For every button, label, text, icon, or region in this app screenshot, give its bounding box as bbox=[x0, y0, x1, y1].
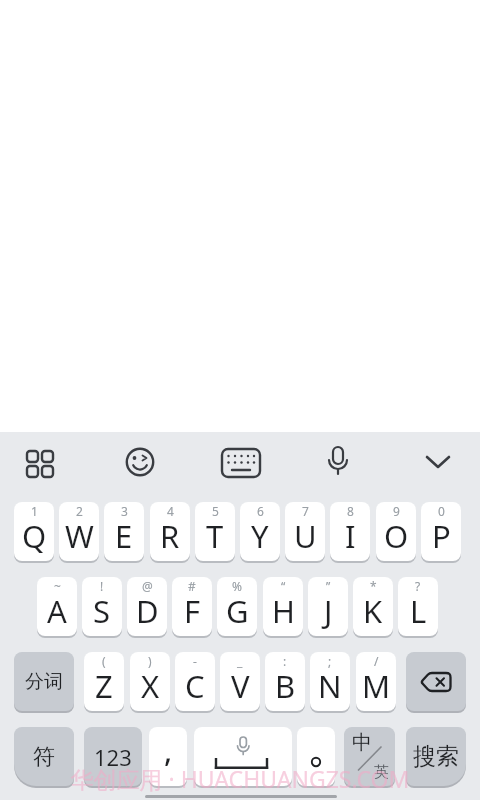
staticText: O bbox=[384, 515, 409, 557]
staticText: T bbox=[206, 515, 224, 557]
staticText: - bbox=[193, 653, 197, 669]
staticText: 分词 bbox=[25, 670, 63, 694]
staticText: ! bbox=[100, 578, 104, 594]
button[interactable]: ” bbox=[308, 577, 348, 636]
staticText: Z bbox=[95, 665, 113, 707]
button[interactable]: 8 bbox=[330, 502, 370, 561]
staticText: K bbox=[363, 590, 383, 632]
button[interactable]: / bbox=[356, 652, 396, 711]
staticText: : bbox=[283, 653, 287, 669]
staticText: “ bbox=[281, 578, 286, 594]
button[interactable]: ) bbox=[130, 652, 170, 711]
staticText: 3 bbox=[121, 503, 128, 519]
staticText: ? bbox=[415, 578, 421, 594]
button[interactable]: , bbox=[149, 727, 187, 786]
staticText: L bbox=[410, 590, 427, 632]
staticText: B bbox=[275, 665, 296, 707]
staticText: * bbox=[370, 578, 377, 594]
button[interactable]: “ bbox=[263, 577, 303, 636]
staticText: 5 bbox=[212, 503, 219, 519]
button[interactable] bbox=[118, 440, 162, 484]
staticText: ( bbox=[102, 653, 106, 669]
button[interactable]: ( bbox=[84, 652, 124, 711]
staticText: @ bbox=[142, 578, 153, 594]
button[interactable]: - bbox=[175, 652, 215, 711]
button[interactable]: # bbox=[172, 577, 212, 636]
staticText: G bbox=[226, 590, 249, 632]
staticText: 0 bbox=[438, 503, 445, 519]
button[interactable]: _ bbox=[220, 652, 260, 711]
staticText: A bbox=[47, 590, 67, 632]
staticText: F bbox=[184, 590, 201, 632]
staticText: 华创应用 · HUACHUANGZS.COM bbox=[0, 763, 480, 794]
button[interactable]: 4 bbox=[150, 502, 190, 561]
button[interactable] bbox=[18, 441, 62, 485]
button[interactable] bbox=[194, 727, 292, 786]
staticText: N bbox=[318, 665, 342, 707]
button[interactable] bbox=[218, 444, 266, 482]
staticText: _ bbox=[237, 653, 243, 669]
staticText: 8 bbox=[347, 503, 354, 519]
button[interactable]: 9 bbox=[376, 502, 416, 561]
button[interactable]: 搜索 bbox=[406, 727, 466, 786]
staticText: % bbox=[232, 578, 242, 594]
staticText: 2 bbox=[76, 503, 83, 519]
staticText: S bbox=[93, 590, 111, 632]
button[interactable] bbox=[297, 727, 335, 786]
button[interactable]: 符 bbox=[14, 727, 74, 786]
button[interactable]: 中 bbox=[344, 727, 395, 786]
staticText: 中 bbox=[352, 730, 372, 755]
button[interactable] bbox=[406, 652, 466, 711]
button[interactable]: ! bbox=[82, 577, 122, 636]
staticText: I bbox=[345, 515, 356, 557]
staticText: C bbox=[185, 665, 205, 707]
staticText: ) bbox=[148, 653, 152, 669]
button[interactable]: 123 bbox=[84, 727, 142, 786]
button[interactable]: 7 bbox=[285, 502, 325, 561]
staticText: P bbox=[432, 515, 451, 557]
staticText: / bbox=[374, 653, 379, 669]
staticText: 7 bbox=[302, 503, 309, 519]
staticText: , bbox=[164, 730, 173, 771]
button[interactable]: 3 bbox=[104, 502, 144, 561]
staticText: D bbox=[136, 590, 159, 632]
button[interactable]: @ bbox=[127, 577, 167, 636]
staticText: U bbox=[294, 515, 317, 557]
staticText: 4 bbox=[167, 503, 174, 519]
staticText: J bbox=[324, 590, 333, 632]
staticText: 搜索 bbox=[413, 742, 459, 771]
button[interactable]: : bbox=[265, 652, 305, 711]
staticText: Q bbox=[22, 515, 47, 557]
staticText: # bbox=[188, 578, 196, 594]
button[interactable]: % bbox=[217, 577, 257, 636]
staticText: Y bbox=[251, 515, 269, 557]
staticText: ~ bbox=[54, 578, 61, 594]
staticText: 1 bbox=[31, 503, 38, 519]
button[interactable]: 5 bbox=[195, 502, 235, 561]
staticText: 9 bbox=[393, 503, 400, 519]
staticText: 符 bbox=[33, 743, 55, 771]
button[interactable]: 1 bbox=[14, 502, 54, 561]
staticText: 123 bbox=[94, 742, 132, 772]
staticText: R bbox=[160, 515, 180, 557]
staticText: H bbox=[272, 590, 295, 632]
button[interactable] bbox=[416, 440, 460, 484]
button[interactable]: 6 bbox=[240, 502, 280, 561]
staticText: M bbox=[362, 665, 391, 707]
button[interactable]: ~ bbox=[37, 577, 77, 636]
staticText: 英 bbox=[374, 763, 389, 782]
staticText: W bbox=[65, 515, 94, 557]
button[interactable]: ? bbox=[398, 577, 438, 636]
staticText: V bbox=[231, 665, 250, 707]
button[interactable] bbox=[316, 440, 360, 484]
button[interactable]: ; bbox=[310, 652, 350, 711]
button[interactable]: * bbox=[353, 577, 393, 636]
staticText: 6 bbox=[257, 503, 264, 519]
staticText: ” bbox=[326, 578, 331, 594]
button[interactable]: 2 bbox=[59, 502, 99, 561]
staticText: X bbox=[141, 665, 160, 707]
button[interactable]: 0 bbox=[421, 502, 461, 561]
button[interactable]: 分词 bbox=[14, 652, 74, 711]
staticText: E bbox=[115, 515, 133, 557]
